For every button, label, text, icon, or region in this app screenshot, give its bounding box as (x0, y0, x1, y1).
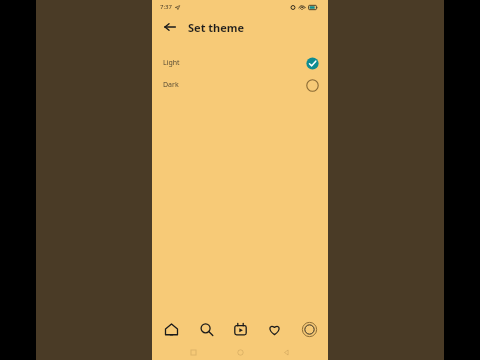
button[interactable]: Likes (259, 315, 289, 343)
staticText: Dark (163, 80, 179, 90)
button[interactable]: Light (152, 52, 328, 74)
staticText: 7:37 (160, 3, 172, 11)
button[interactable]: Search (191, 315, 221, 343)
button[interactable]: Back (160, 17, 180, 37)
button[interactable]: Home (156, 315, 186, 343)
staticText: Light (163, 58, 180, 68)
button[interactable]: Reels (225, 315, 255, 343)
staticText: Set theme (188, 20, 245, 35)
button[interactable]: Profile (294, 315, 324, 343)
button[interactable]: Dark (152, 74, 328, 96)
